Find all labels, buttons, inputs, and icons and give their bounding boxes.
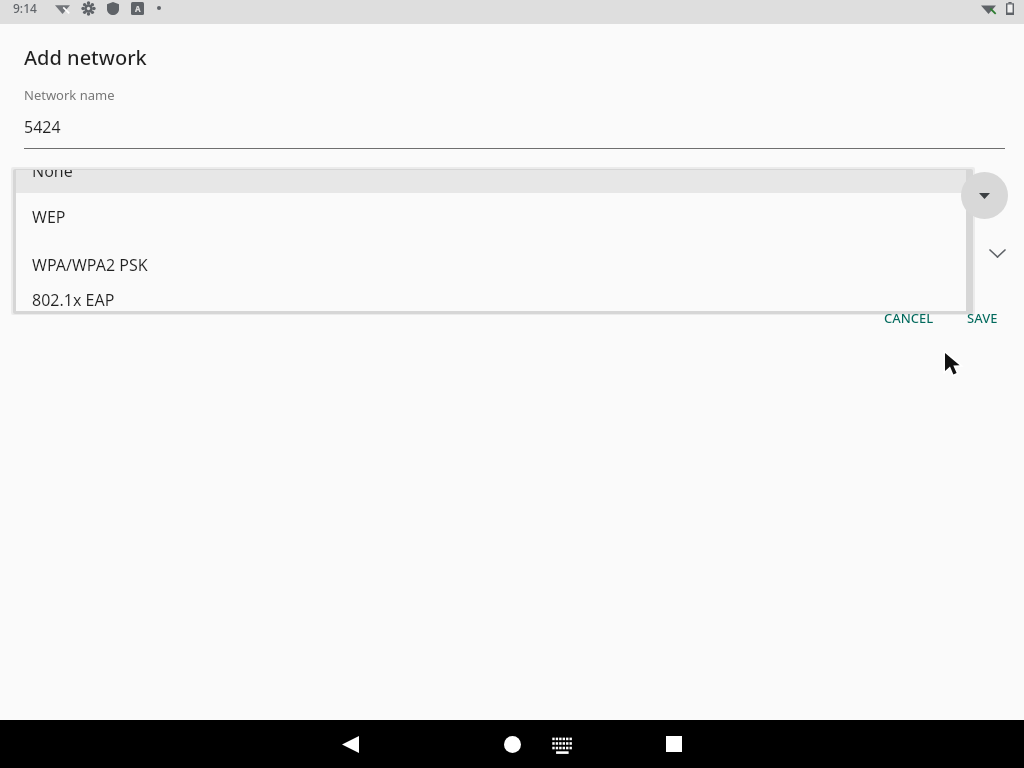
- button[interactable]: 802.1x EAP: [16, 289, 966, 311]
- staticText: 9:14: [13, 0, 37, 16]
- button[interactable]: Security spinner: [961, 172, 1008, 219]
- staticText: SAVE: [967, 309, 998, 327]
- staticText: WEP: [32, 206, 66, 228]
- staticText: Security: [24, 172, 73, 190]
- staticText: None: [32, 170, 73, 182]
- button[interactable]: WEP: [16, 193, 966, 241]
- button[interactable]: CANCEL: [876, 304, 942, 332]
- staticText: Network name: [24, 86, 115, 104]
- button[interactable]: Back: [326, 720, 374, 768]
- staticText: CANCEL: [884, 309, 934, 327]
- button[interactable]: Home: [488, 720, 536, 768]
- staticText: WPA/WPA2 PSK: [32, 254, 148, 276]
- button[interactable]: Recent apps: [650, 720, 698, 768]
- button[interactable]: None: [16, 170, 966, 193]
- staticText: Add network: [24, 44, 147, 71]
- staticText: 5424: [24, 116, 61, 138]
- staticText: A: [135, 3, 141, 14]
- button[interactable]: Expand security options: [980, 236, 1014, 270]
- staticText: 802.1x EAP: [32, 289, 115, 311]
- button[interactable]: WPA/WPA2 PSK: [16, 241, 966, 289]
- button[interactable]: Keyboard: [539, 721, 585, 767]
- button[interactable]: SAVE: [959, 304, 1006, 332]
